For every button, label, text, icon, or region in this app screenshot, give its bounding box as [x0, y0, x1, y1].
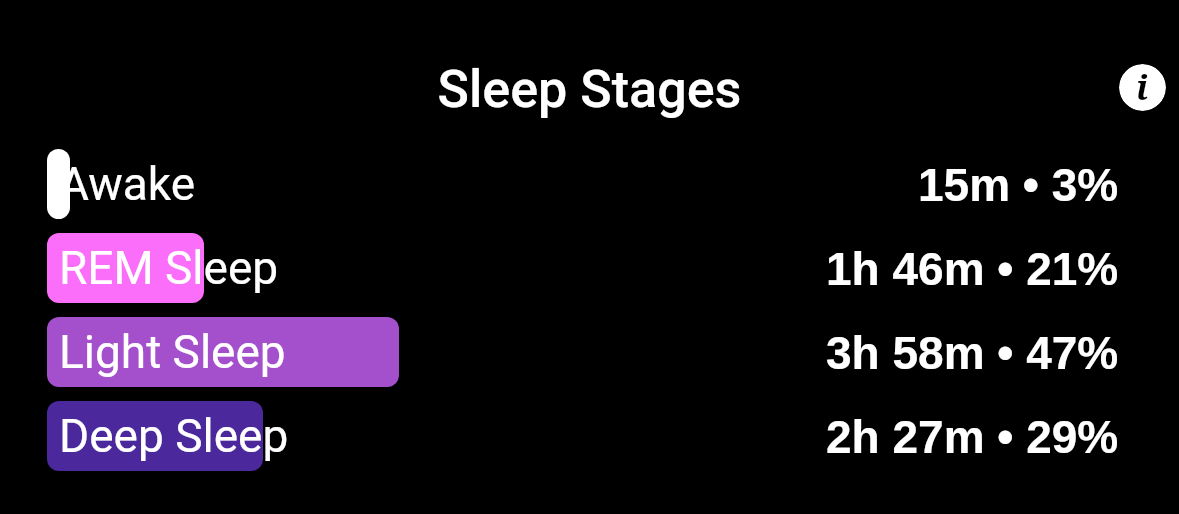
button[interactable]: Light Sleep	[0, 317, 1179, 387]
button[interactable]: Deep Sleep	[0, 401, 1179, 471]
button[interactable]: REM Sleep	[0, 233, 1179, 303]
staticText: 3h 58m • 47%	[826, 327, 1119, 378]
staticText: 2h 27m • 29%	[826, 411, 1119, 462]
staticText: Sleep Stages	[0, 59, 1179, 120]
staticText: Awake	[59, 157, 196, 211]
staticText: 15m • 3%	[918, 159, 1119, 210]
staticText: Light Sleep	[59, 325, 286, 379]
button[interactable]: Information	[1119, 64, 1166, 111]
staticText: 1h 46m • 21%	[826, 243, 1119, 294]
button[interactable]: Awake	[0, 149, 1179, 219]
staticText: i	[1136, 64, 1149, 110]
staticText: REM Sleep	[59, 241, 279, 295]
staticText: Deep Sleep	[59, 409, 289, 463]
